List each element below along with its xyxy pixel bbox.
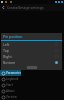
button[interactable]: Start bbox=[0, 82, 21, 88]
button[interactable]: Bottom bbox=[1, 59, 62, 65]
staticText: Top bbox=[3, 48, 9, 53]
staticText: Right bbox=[3, 54, 12, 59]
staticText: Version update bbox=[6, 95, 21, 99]
staticText: About Seeds bbox=[6, 89, 21, 93]
staticText: Parameters bbox=[6, 71, 21, 75]
staticText: Left bbox=[3, 42, 10, 47]
button[interactable]: About Seeds bbox=[0, 88, 21, 94]
staticText: Pin position bbox=[3, 34, 23, 39]
button[interactable]: Right bbox=[1, 53, 62, 59]
button[interactable]: Left bbox=[1, 41, 62, 47]
button[interactable]: Parameters bbox=[0, 70, 21, 76]
staticText: Start bbox=[6, 83, 13, 87]
button[interactable]: Version update bbox=[0, 94, 21, 100]
button[interactable]: Logbook settings bbox=[0, 76, 21, 82]
staticText: Logbook settings bbox=[6, 77, 21, 81]
staticText: Bottom bbox=[3, 60, 16, 65]
button[interactable]: Back bbox=[0, 4, 7, 11]
staticText: Create/Image settings bbox=[7, 5, 44, 10]
button[interactable]: Top bbox=[1, 47, 62, 53]
